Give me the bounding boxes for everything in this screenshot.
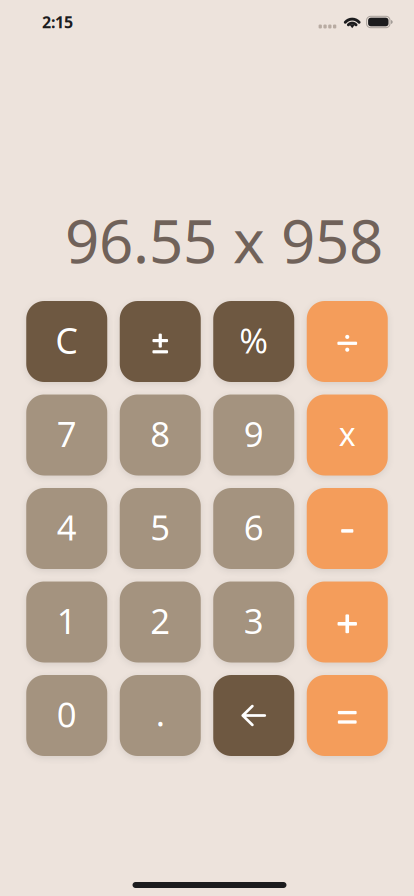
button[interactable]: . [120, 675, 201, 756]
button[interactable]: % [213, 301, 294, 382]
staticText: % [239, 317, 268, 363]
staticText: 2:15 [42, 11, 73, 33]
button[interactable]: 1 [26, 581, 107, 662]
button[interactable]: 9 [213, 394, 294, 475]
staticText: 7 [57, 410, 77, 456]
button[interactable]: x [307, 394, 388, 475]
button[interactable]: 7 [26, 394, 107, 475]
staticText: 2 [150, 597, 170, 643]
staticText: 4 [57, 504, 77, 550]
button[interactable]: Plus [307, 581, 388, 662]
staticText: 5 [150, 504, 170, 550]
button[interactable]: Equals [307, 675, 388, 756]
staticText: 1 [57, 597, 77, 643]
button[interactable]: Minus [307, 488, 388, 569]
staticText: x [339, 412, 356, 455]
button[interactable]: Plus minus [120, 301, 201, 382]
button[interactable]: Delete [213, 675, 294, 756]
staticText: 96.55 x 958 [65, 200, 383, 280]
staticText: 0 [57, 691, 77, 737]
button[interactable]: 2 [120, 581, 201, 662]
button[interactable]: C [26, 301, 107, 382]
staticText: 3 [244, 597, 264, 643]
staticText: 6 [244, 504, 264, 550]
button[interactable]: 0 [26, 675, 107, 756]
staticText: 8 [150, 410, 170, 456]
button[interactable]: 3 [213, 581, 294, 662]
button[interactable]: Divide [307, 301, 388, 382]
button[interactable]: 4 [26, 488, 107, 569]
staticText: C [55, 316, 78, 364]
button[interactable]: 5 [120, 488, 201, 569]
staticText: . [156, 690, 165, 736]
button[interactable]: 8 [120, 394, 201, 475]
staticText: 9 [244, 410, 264, 456]
button[interactable]: 6 [213, 488, 294, 569]
